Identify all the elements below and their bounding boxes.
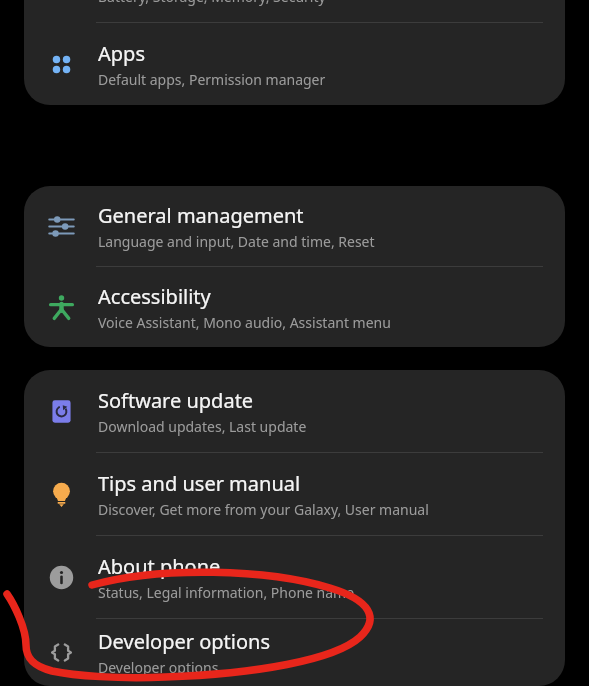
- staticText: Default apps, Permission manager: [98, 70, 326, 89]
- button[interactable]: Accessibility: [24, 267, 565, 347]
- other: Software update: [24, 395, 98, 428]
- button[interactable]: Software update: [24, 370, 565, 452]
- staticText: About phone: [98, 553, 221, 580]
- other: Apps: [24, 48, 98, 81]
- staticText: Voice Assistant, Mono audio, Assistant m…: [98, 313, 391, 332]
- staticText: Software update: [98, 387, 254, 414]
- staticText: Battery, Storage, Memory, Security: [98, 0, 326, 6]
- staticText: Status, Legal information, Phone name: [98, 583, 355, 602]
- button[interactable]: Device care: [24, 0, 565, 22]
- staticText: Accessibility: [98, 283, 211, 310]
- staticText: Download updates, Last update: [98, 417, 307, 436]
- other: General management: [24, 210, 98, 243]
- staticText: Tips and user manual: [98, 470, 301, 497]
- staticText: Apps: [98, 40, 145, 67]
- button[interactable]: Tips and user manual: [24, 453, 565, 535]
- staticText: Language and input, Date and time, Reset: [98, 232, 375, 251]
- other: Developer options: [24, 636, 98, 669]
- other: Tips and user manual: [24, 478, 98, 511]
- staticText: Developer options: [98, 628, 271, 655]
- staticText: General management: [98, 202, 304, 229]
- staticText: Developer options: [98, 658, 219, 677]
- staticText: Discover, Get more from your Galaxy, Use…: [98, 500, 429, 519]
- other: Accessibility: [24, 291, 98, 324]
- button[interactable]: Developer options: [24, 619, 565, 686]
- button[interactable]: General management: [24, 186, 565, 266]
- button[interactable]: Apps: [24, 23, 565, 105]
- other: About phone: [24, 561, 98, 594]
- button[interactable]: About phone: [24, 536, 565, 618]
